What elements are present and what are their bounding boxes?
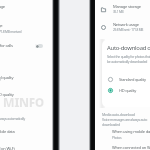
button[interactable]: rage [0,4,5,10]
staticText: obile data [0,129,15,135]
button[interactable]: HD quality [102,85,150,96]
staticText: D quality [0,92,14,97]
staticText: ce for calls [0,43,13,49]
staticText: Standard quality [119,77,146,82]
staticText: y [0,78,1,82]
button[interactable]: Network usage [95,20,150,34]
staticText: Network usage [113,22,139,28]
staticText: ways automatically [0,116,25,120]
staticText: 35.1 MB [113,10,124,14]
staticText: Manage storage [113,4,141,10]
staticText: Select the quality for photos that be au… [107,54,150,64]
staticText: Media auto-download [102,112,135,117]
staticText: Photos [112,135,122,139]
staticText: When using mobile data [112,129,150,135]
staticText: Auto-download on [107,44,150,52]
button[interactable]: Manage storage [95,2,150,16]
button[interactable]: When connected on Wi-Fi [112,145,150,150]
staticText: rd quality [0,75,14,80]
staticText: 29.8 MB sent · 171.8 MB [113,28,144,32]
button[interactable]: ce for calls [0,42,54,50]
other: Network usage [101,25,106,30]
staticText: ge [0,23,3,29]
button[interactable]: ge [0,23,24,33]
staticText: Voice messages are always auto downloade… [102,117,148,127]
staticText: When connected on Wi-Fi [112,145,150,150]
button[interactable]: When using mobile data [112,129,150,139]
staticText: HD quality [119,88,137,93]
staticText: d on Wi-Fi [0,146,15,150]
button[interactable]: Standard quality [102,74,150,85]
staticText: MINFO [3,94,44,110]
staticText: · 171.8 MB received [0,29,22,33]
other: Manage storage [101,7,106,12]
